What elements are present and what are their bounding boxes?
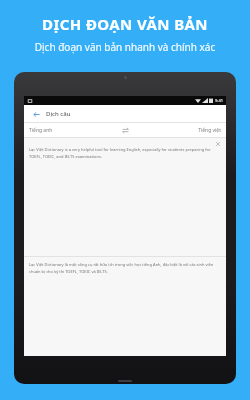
button[interactable]: Clear text: [214, 140, 222, 148]
staticText: Lạc Việt Dictionary là một công cụ rất h…: [29, 262, 219, 274]
staticText: Tiếng việt: [198, 127, 221, 134]
staticText: Dịch câu: [46, 110, 71, 118]
staticText: Tiếng anh: [29, 127, 53, 134]
staticText: 9:41: [215, 98, 223, 103]
button[interactable]: Swap languages: [119, 124, 131, 136]
button[interactable]: Tiếng anh: [29, 127, 119, 134]
staticText: Dịch đoạn văn bản nhanh và chính xác: [0, 40, 250, 54]
button[interactable]: Tiếng việt: [131, 127, 221, 134]
staticText: DỊCH ĐOẠN VĂN BẢN: [0, 14, 250, 34]
button[interactable]: Back: [30, 108, 42, 120]
staticText: Lạc Việt Dictionary is a very helpful to…: [29, 147, 219, 159]
